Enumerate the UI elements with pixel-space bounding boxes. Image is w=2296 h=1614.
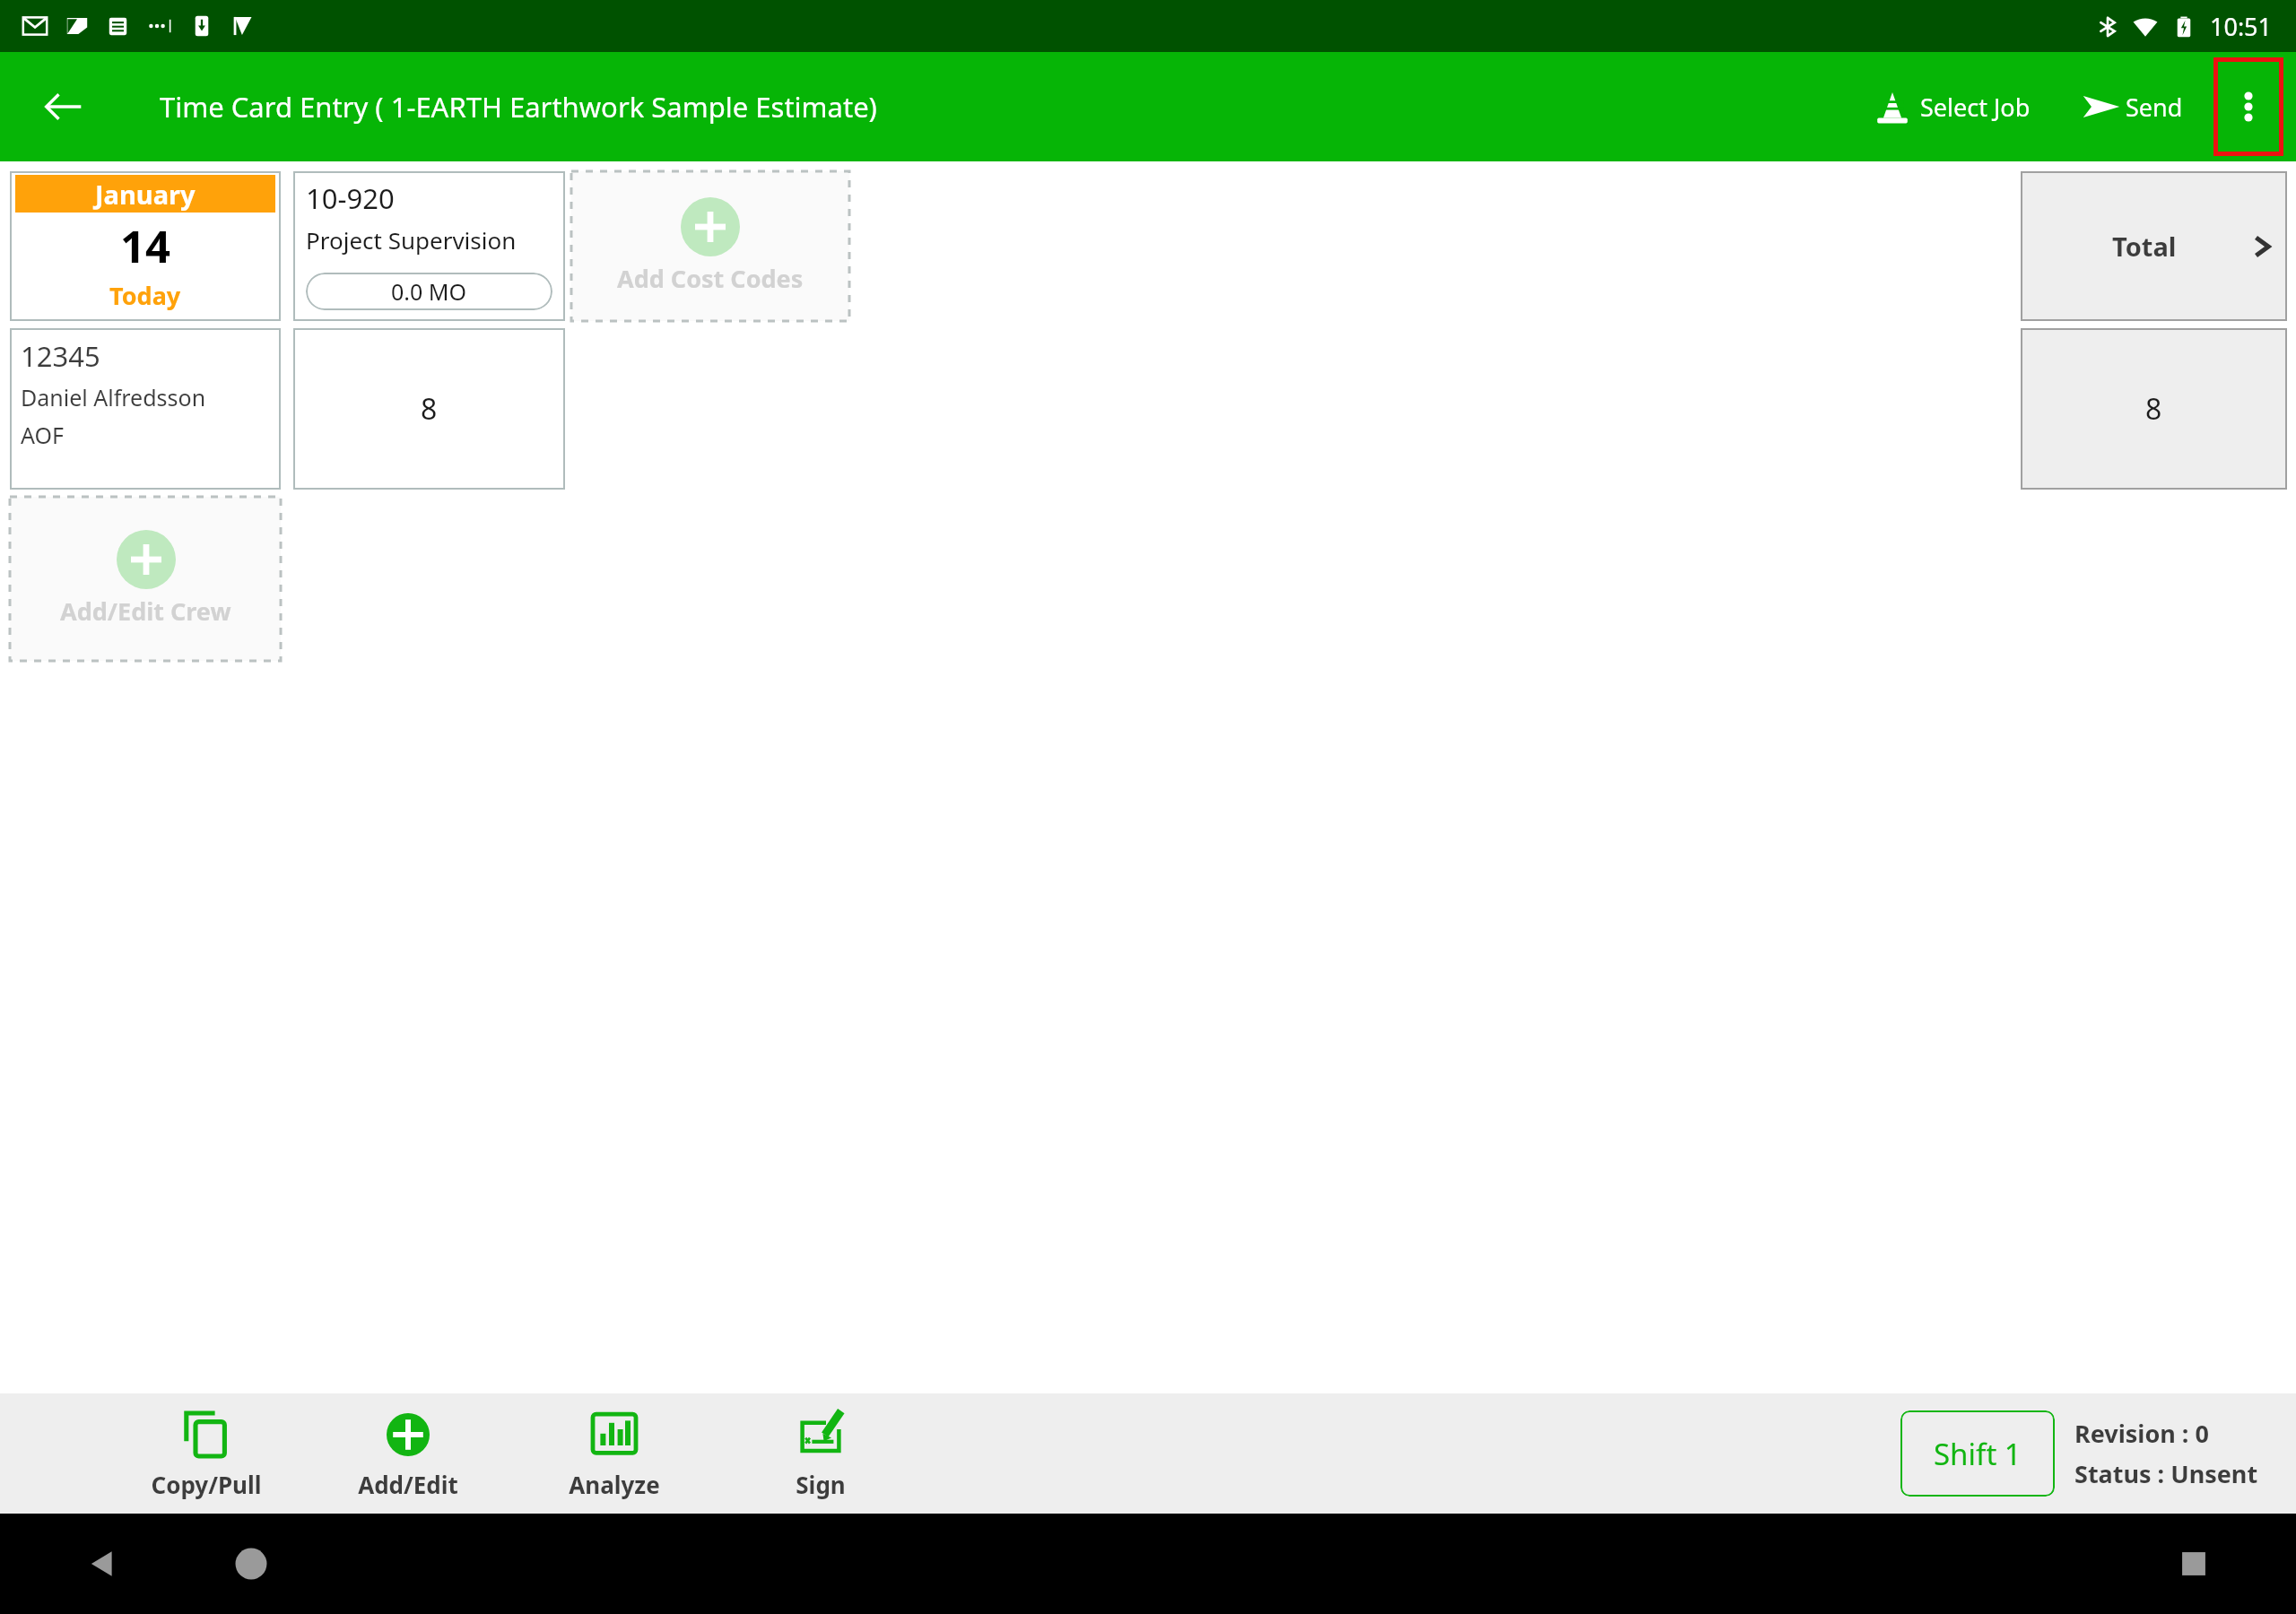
button[interactable]: Add/Edit [305,1393,511,1514]
button[interactable]: Add Cost Codes [571,171,849,321]
staticText: Project Supervision [306,224,517,256]
button[interactable]: Analyze [511,1393,717,1514]
staticText: Total [2112,229,2177,264]
button[interactable]: Sign [717,1393,924,1514]
staticText: AOF [21,420,64,450]
button[interactable]: 8 [293,328,565,490]
staticText: 10-920 [306,179,395,217]
staticText: Send [2126,91,2183,124]
staticText: 12345 [21,337,100,375]
button[interactable]: 0.0 MO [306,273,552,310]
staticText: January [95,177,196,212]
button[interactable]: Recents [2169,1539,2219,1589]
staticText: 14 [120,216,171,276]
staticText: 8 [2145,389,2162,429]
staticText: 10:51 [2210,10,2273,43]
staticText: Revision : 0 [2074,1417,2209,1450]
staticText: Copy/Pull [151,1469,262,1500]
button[interactable]: More options [2213,57,2283,156]
staticText: Shift 1 [1934,1434,2022,1474]
staticText: Add Cost Codes [617,262,804,295]
staticText: Status : Unsent [2074,1457,2258,1490]
button[interactable]: Add/Edit Crew [10,497,281,661]
staticText: Daniel Alfredsson [21,382,206,412]
staticText: 8 [421,389,438,429]
button[interactable]: 12345 [10,328,281,490]
button[interactable]: January [10,171,281,321]
button[interactable]: 10-920 [293,171,565,321]
staticText: Analyze [569,1469,660,1500]
button[interactable]: Back [38,81,90,133]
staticText: Add/Edit [358,1469,458,1500]
button[interactable]: Home [226,1539,276,1589]
staticText: Select Job [1920,91,2031,124]
button[interactable]: Send [2070,68,2194,145]
button[interactable]: Back [77,1539,127,1589]
button[interactable]: Select Job [1861,70,2043,143]
button[interactable]: 8 [2021,328,2287,490]
button[interactable]: Copy/Pull [108,1393,305,1514]
button[interactable]: Total [2021,171,2287,321]
staticText: 0.0 MO [391,276,467,307]
staticText: Time Card Entry ( 1-EARTH Earthwork Samp… [160,88,877,126]
staticText: Sign [796,1469,846,1500]
staticText: Today [109,279,181,312]
button[interactable]: Shift 1 [1900,1410,2055,1497]
staticText: Add/Edit Crew [60,594,231,628]
